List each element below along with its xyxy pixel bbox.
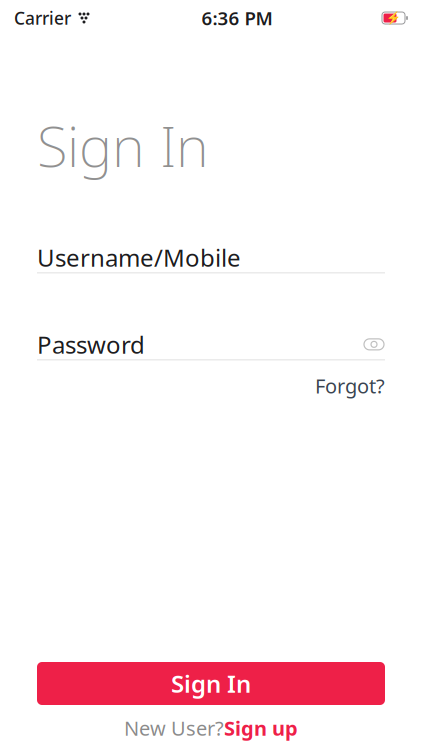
staticText: Password — [37, 328, 145, 360]
staticText: ⚡ — [386, 11, 401, 25]
staticText: Sign In — [171, 668, 251, 699]
staticText: Carrier — [14, 6, 71, 29]
button[interactable]: Show password — [363, 336, 385, 352]
staticText: New User? — [124, 715, 224, 741]
staticText: 6:36 PM — [201, 6, 272, 30]
button[interactable]: Forgot? — [315, 372, 385, 399]
staticText: Forgot? — [315, 372, 385, 399]
staticText: Sign In — [37, 108, 209, 182]
button[interactable]: New User? — [124, 714, 298, 742]
button[interactable]: Sign In — [37, 662, 385, 705]
staticText: Sign up — [224, 715, 298, 741]
staticText: Username/Mobile — [37, 241, 241, 273]
staticText — [71, 6, 76, 29]
